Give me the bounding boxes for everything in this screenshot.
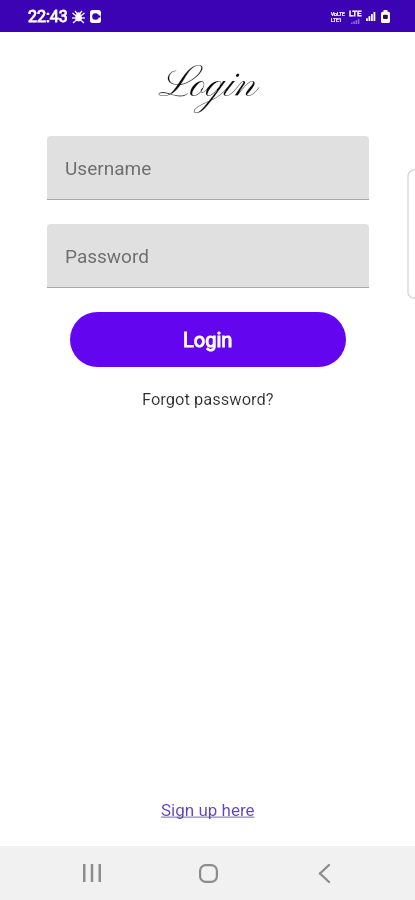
button[interactable]: Forgot password?	[136, 387, 280, 412]
button[interactable]: Username	[47, 136, 369, 199]
button[interactable]: Sign up here	[155, 797, 261, 823]
button[interactable]: Home	[179, 846, 237, 900]
staticText: Login	[183, 328, 233, 351]
button[interactable]: Recent apps	[63, 846, 121, 900]
button[interactable]: Back	[295, 846, 353, 900]
staticText: LTE1	[331, 17, 342, 23]
staticText: LTE	[349, 9, 362, 18]
staticText: 22:43	[28, 7, 68, 26]
staticText: Login	[0, 59, 415, 113]
staticText: Username	[65, 157, 152, 179]
staticText: VoLTE	[331, 11, 345, 17]
staticText: Password	[65, 245, 149, 267]
staticText: Sign up here	[161, 800, 255, 820]
button[interactable]: Password	[47, 224, 369, 287]
staticText: Forgot password?	[142, 390, 274, 409]
button[interactable]: Login	[70, 312, 346, 367]
